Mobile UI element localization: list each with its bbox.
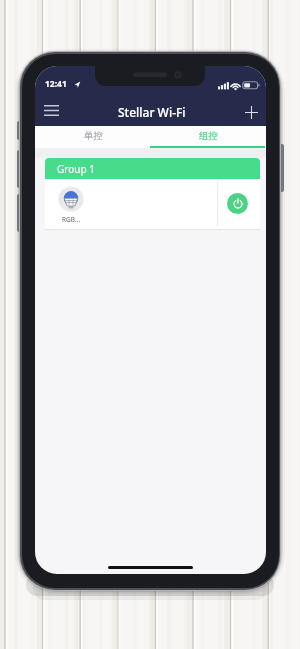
staticText: 组控 [199,130,218,142]
staticText: Stellar Wi-Fi [118,104,186,120]
staticText: 12:41 [45,78,67,90]
button[interactable] [239,101,263,123]
button[interactable] [150,126,265,148]
staticText: RGB... [62,215,81,224]
staticText: 单控 [84,130,103,142]
staticText: Group 1 [57,162,95,176]
button[interactable] [39,99,63,121]
button[interactable]: RGB... [45,179,260,229]
button[interactable] [35,126,150,148]
button[interactable] [227,193,248,214]
